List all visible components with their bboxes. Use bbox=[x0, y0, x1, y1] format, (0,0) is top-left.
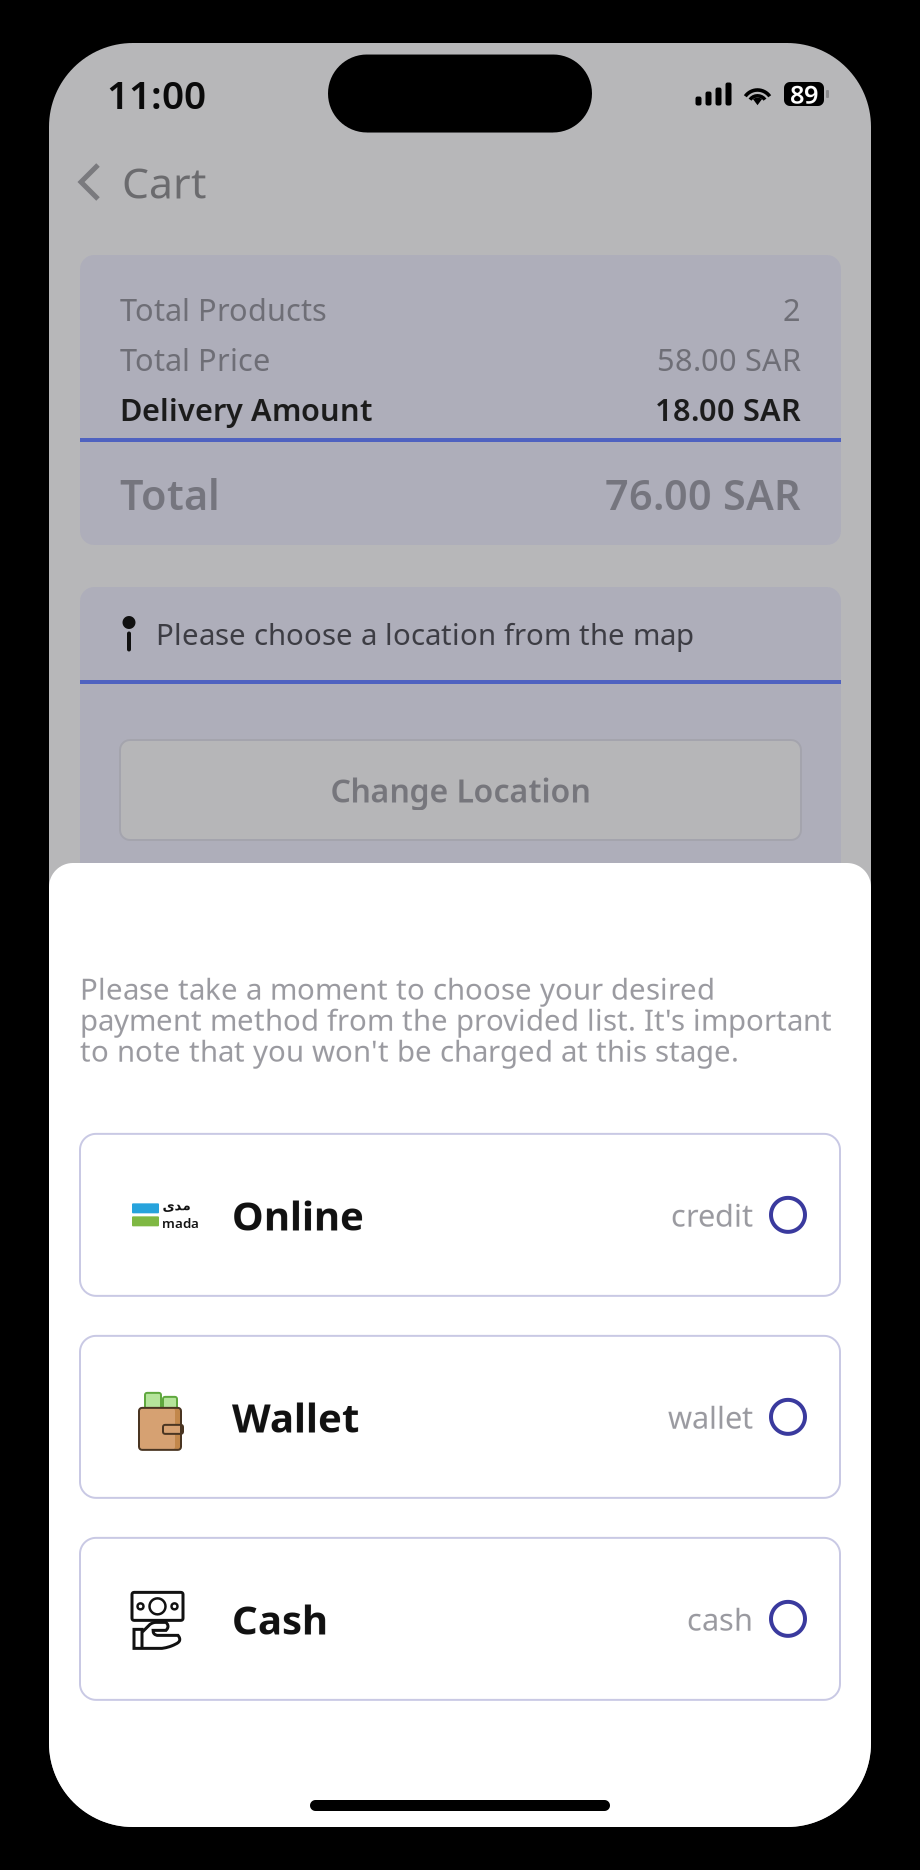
staticText: 11:00 bbox=[107, 68, 206, 120]
staticText: 18.00 SAR bbox=[655, 389, 801, 429]
button[interactable]: Cart bbox=[49, 145, 871, 219]
staticText: Cash bbox=[232, 1592, 328, 1645]
staticText: 58.00 SAR bbox=[657, 339, 801, 379]
staticText: Wallet bbox=[232, 1390, 359, 1443]
staticText: wallet bbox=[668, 1396, 753, 1437]
staticText: Total Products bbox=[120, 289, 327, 329]
staticText: mada bbox=[162, 1214, 199, 1232]
staticText: 89 bbox=[790, 77, 818, 111]
staticText: Please take a moment to choose your desi… bbox=[80, 969, 832, 1070]
button[interactable]: Cash bbox=[80, 1538, 840, 1700]
staticText: مدى bbox=[162, 1198, 190, 1213]
staticText: Online bbox=[232, 1188, 364, 1241]
button[interactable]: Wallet bbox=[80, 1336, 840, 1498]
staticText: Total bbox=[120, 467, 220, 521]
staticText: 76.00 SAR bbox=[605, 467, 801, 521]
staticText: credit bbox=[671, 1194, 753, 1235]
staticText: Cart bbox=[122, 154, 206, 210]
staticText: Please choose a location from the map bbox=[156, 614, 694, 653]
button[interactable]: Change Location bbox=[120, 740, 801, 840]
staticText: cash bbox=[687, 1598, 753, 1639]
staticText: Total Price bbox=[120, 339, 270, 379]
staticText: 2 bbox=[783, 289, 801, 329]
staticText: Delivery Amount bbox=[120, 389, 372, 429]
staticText: Change Location bbox=[330, 769, 590, 811]
button[interactable]: مدى bbox=[80, 1134, 840, 1296]
